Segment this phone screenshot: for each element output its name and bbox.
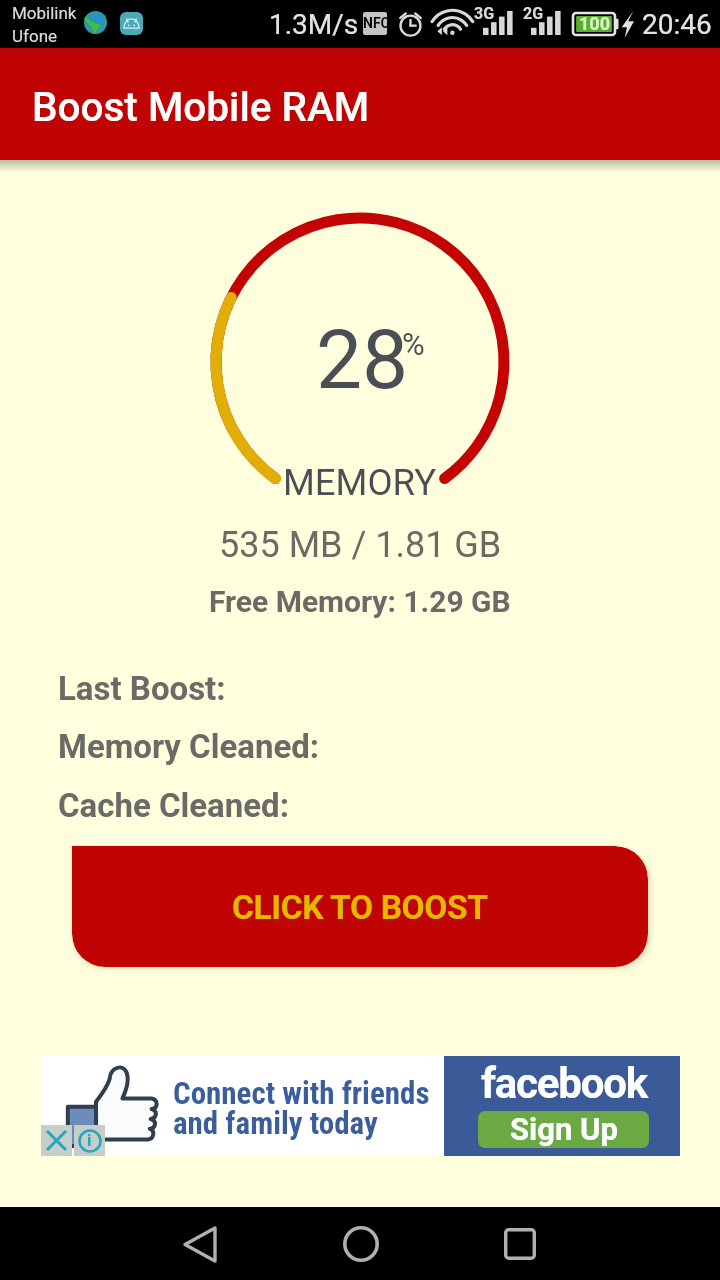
staticText: 100: [579, 13, 610, 34]
staticText: CLICK TO BOOST: [232, 888, 488, 927]
staticText: MEMORY: [283, 461, 437, 504]
button[interactable]: Home: [331, 1216, 391, 1272]
button[interactable]: Close ad: [41, 1125, 72, 1156]
staticText: 3G: [474, 4, 495, 23]
staticText: i: [87, 1130, 92, 1150]
staticText: Free Memory: 1.29 GB: [209, 584, 511, 619]
button[interactable]: Ad information: [74, 1125, 105, 1156]
staticText: Cache Cleaned:: [58, 786, 289, 825]
staticText: Mobilink: [12, 3, 77, 23]
staticText: facebook: [481, 1059, 647, 1108]
staticText: Connect with friends and family today: [173, 1075, 430, 1141]
staticText: Memory Cleaned:: [58, 727, 320, 766]
staticText: 2G: [523, 4, 544, 23]
staticText: 20:46: [642, 8, 712, 41]
staticText: 535 MB / 1.81 GB: [219, 524, 502, 566]
button[interactable]: Back: [170, 1216, 230, 1272]
staticText: %: [402, 326, 425, 362]
staticText: Last Boost:: [58, 669, 226, 708]
staticText: NFC: [363, 15, 387, 31]
button[interactable]: Recent apps: [490, 1216, 550, 1272]
button[interactable]: CLICK TO BOOST: [72, 846, 648, 967]
staticText: Ufone: [12, 26, 58, 46]
staticText: Boost Mobile RAM: [32, 83, 370, 130]
staticText: Sign Up: [510, 1111, 618, 1147]
staticText: 28: [316, 312, 409, 408]
staticText: 1.3M/s: [269, 8, 359, 41]
button[interactable]: facebook: [41, 1056, 680, 1156]
